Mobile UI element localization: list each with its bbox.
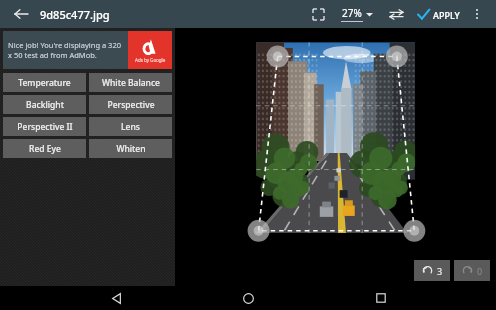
staticText: 0 (477, 265, 483, 277)
button[interactable]: 27% (339, 6, 375, 22)
button[interactable]: Perspective II (3, 117, 86, 136)
button[interactable]: Backlight (3, 95, 86, 114)
button[interactable]: Fullscreen (307, 3, 329, 25)
button[interactable]: More options (468, 5, 486, 23)
staticText: White Balance (102, 77, 160, 89)
button[interactable]: Recent apps (364, 286, 398, 310)
button[interactable]: Whiten (89, 139, 172, 158)
button[interactable]: Redo (454, 260, 490, 281)
button[interactable]: APPLY (417, 8, 460, 21)
staticText: Nice job! You're displaying a 320 x 50 t… (8, 40, 125, 60)
staticText: Red Eye (29, 143, 61, 155)
button[interactable]: Lens (89, 117, 172, 136)
staticText: APPLY (433, 9, 460, 21)
button[interactable]: White Balance (89, 73, 172, 92)
button[interactable]: Compare (385, 3, 407, 25)
button[interactable]: Back (10, 3, 32, 25)
staticText: 3 (437, 265, 443, 277)
staticText: 27% (342, 6, 362, 20)
staticText: Lens (121, 121, 140, 133)
button[interactable]: Red Eye (3, 139, 86, 158)
staticText: 9d85c477.jpg (40, 7, 110, 22)
button[interactable]: Home (231, 286, 265, 310)
button[interactable]: Undo (414, 260, 450, 281)
staticText: Whiten (116, 143, 146, 155)
staticText: Temperature (18, 77, 71, 89)
staticText: Ads by Google (135, 57, 166, 63)
button[interactable]: Temperature (3, 73, 86, 92)
staticText: Perspective II (17, 121, 73, 133)
staticText: Perspective (107, 99, 155, 111)
button[interactable]: Perspective (89, 95, 172, 114)
button[interactable]: Nice job! You're displaying a 320 x 50 t… (3, 31, 172, 69)
staticText: Backlight (26, 99, 64, 111)
button[interactable]: Back (99, 286, 133, 310)
